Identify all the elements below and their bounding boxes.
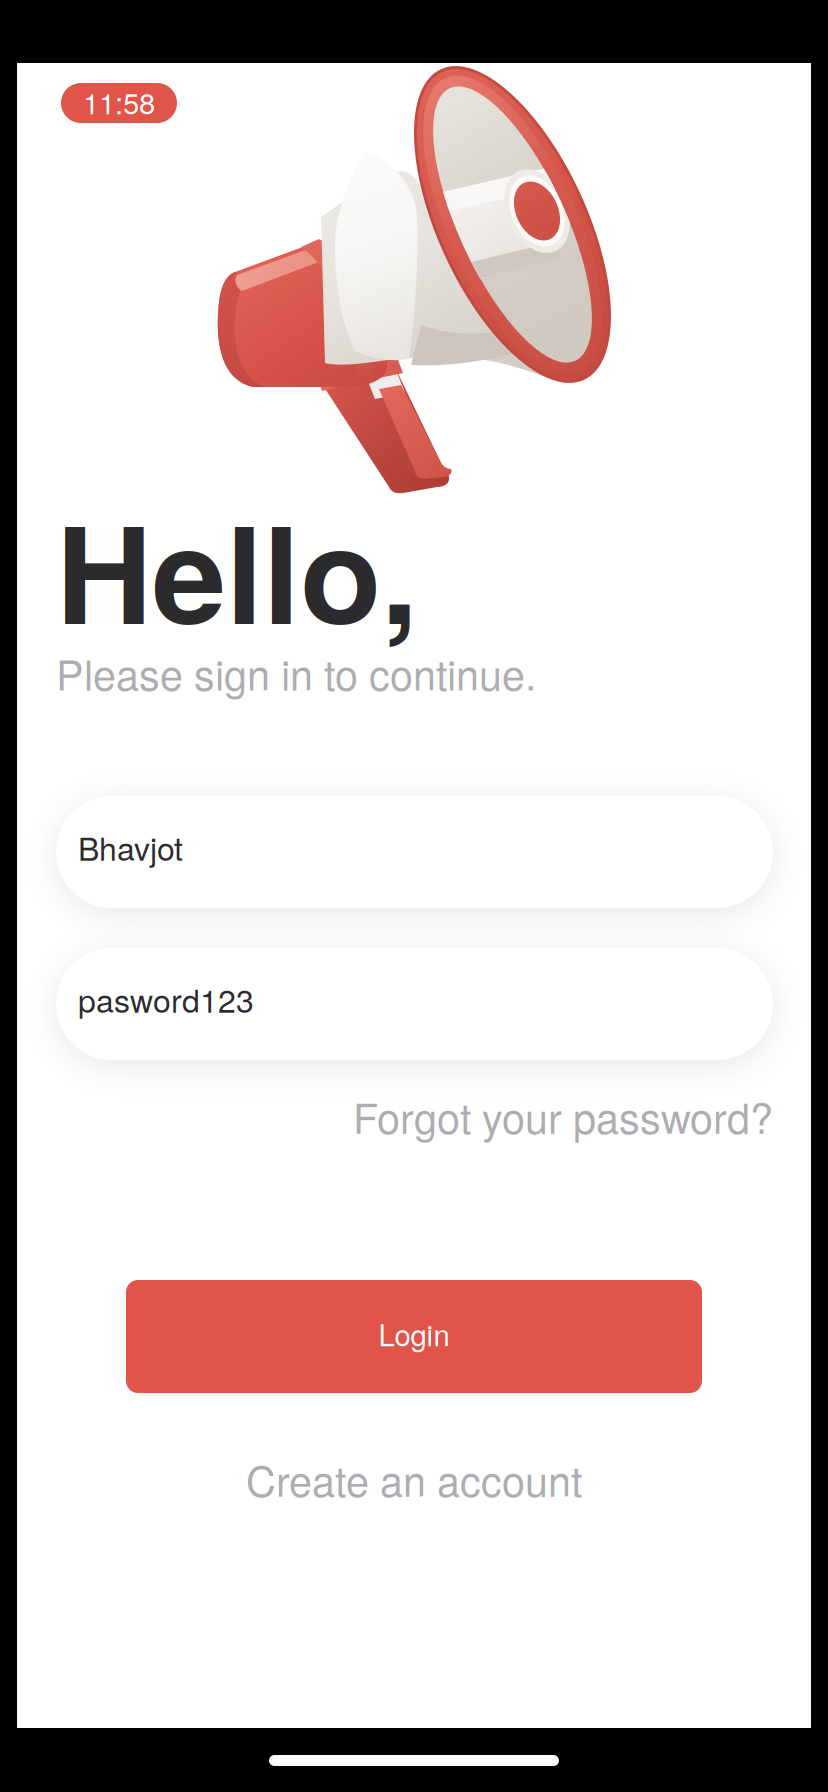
button[interactable]: pasword123 xyxy=(56,948,773,1060)
staticText: Hello, xyxy=(56,474,418,665)
staticText: 11:58 xyxy=(83,80,155,122)
staticText: Bhavjot xyxy=(78,824,183,870)
staticText: Create an account xyxy=(246,1449,582,1509)
staticText: Login xyxy=(378,1312,449,1354)
button[interactable]: Forgot your password? xyxy=(347,1088,773,1144)
staticText: Please sign in to continue. xyxy=(56,643,536,702)
button[interactable]: Bhavjot xyxy=(56,796,773,908)
staticText: Forgot your password? xyxy=(353,1086,773,1146)
staticText: pasword123 xyxy=(78,976,254,1022)
button[interactable]: Login xyxy=(126,1280,702,1393)
button[interactable]: Create an account xyxy=(214,1451,614,1507)
